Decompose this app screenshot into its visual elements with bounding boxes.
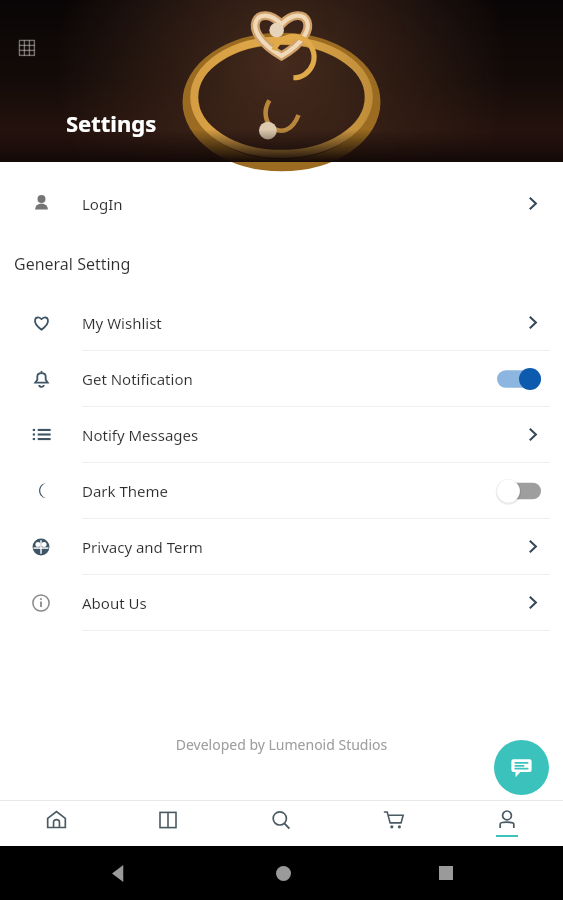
button[interactable]: Dark Theme [0,463,563,518]
button[interactable]: Privacy and Term [0,519,563,574]
staticText: Notify Messages [82,425,524,445]
staticText: Dark Theme [82,481,497,501]
button[interactable]: Get Notification [0,351,563,406]
button[interactable]: Menu [17,38,37,58]
staticText: About Us [82,593,524,613]
button[interactable]: Search [224,800,337,846]
staticText: Get Notification [82,369,497,389]
button[interactable]: Notify Messages [0,407,563,462]
button[interactable]: Chat [494,740,549,795]
button[interactable]: LogIn [0,176,563,231]
button[interactable]: Catalog [112,800,224,846]
staticText: General Setting [14,253,131,275]
button[interactable]: My Wishlist [0,295,563,350]
staticText: My Wishlist [82,313,524,333]
button[interactable]: Profile [450,800,563,846]
button[interactable]: Cart [337,800,450,846]
button[interactable]: Home [0,800,112,846]
staticText: LogIn [82,194,524,214]
staticText: Privacy and Term [82,537,524,557]
button[interactable]: About Us [0,575,563,630]
staticText: Developed by Lumenoid Studios [0,735,563,754]
staticText: Settings [66,108,157,138]
